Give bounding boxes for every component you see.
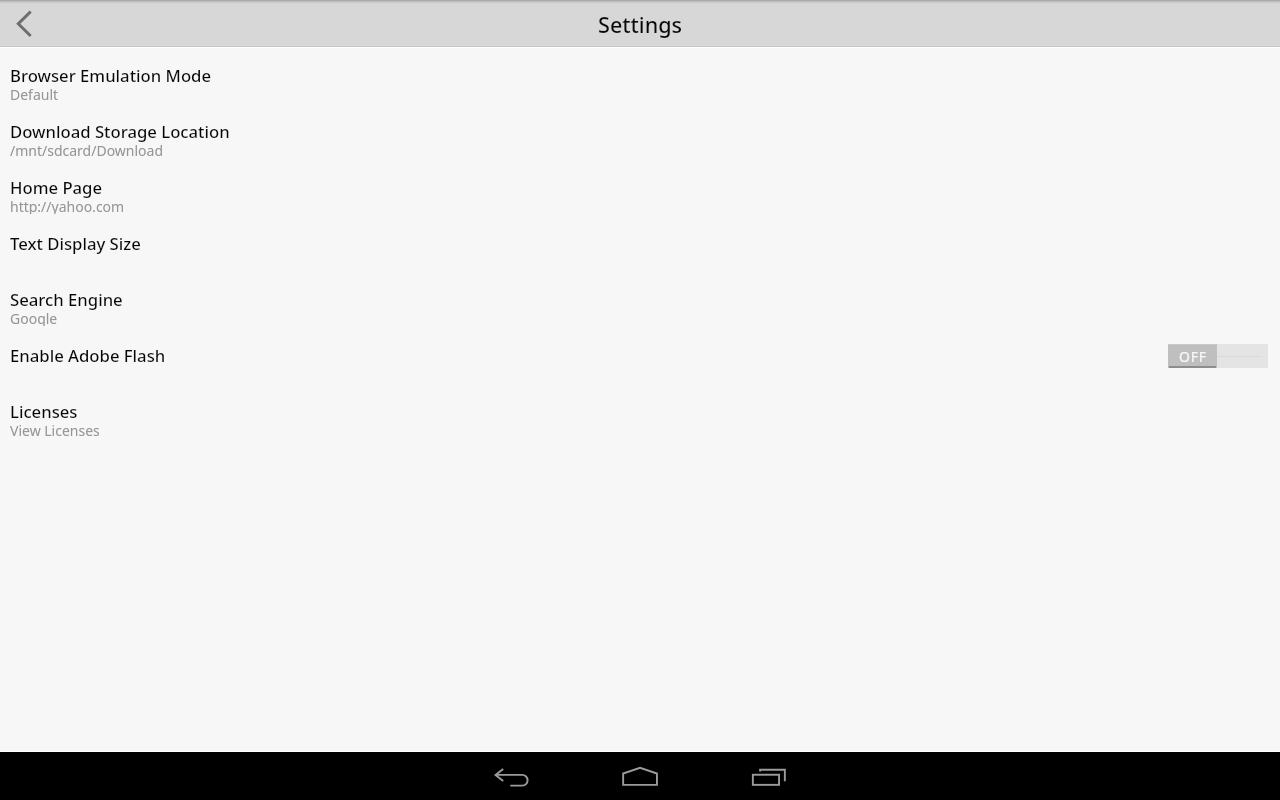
staticText: Download Storage Location (10, 120, 230, 143)
staticText: /mnt/sdcard/Download (10, 141, 164, 158)
staticText: View Licenses (10, 421, 100, 438)
button[interactable]: Home Page (0, 160, 1280, 216)
staticText: Text Display Size (10, 232, 141, 255)
staticText: OFF (1179, 347, 1207, 366)
staticText: Browser Emulation Mode (10, 64, 211, 87)
button[interactable]: Text Display Size (0, 216, 1280, 272)
button[interactable]: Enable Adobe Flash, off (1168, 344, 1268, 368)
staticText: Enable Adobe Flash (10, 344, 166, 367)
button[interactable]: Licenses (0, 384, 1280, 440)
button[interactable]: Navigate up (0, 0, 48, 48)
button[interactable]: Recent apps (745, 752, 793, 800)
button[interactable]: Home (616, 752, 664, 800)
staticText: Licenses (10, 400, 78, 423)
button[interactable]: Enable Adobe Flash (0, 328, 1280, 384)
button[interactable]: Download Storage Location (0, 104, 1280, 160)
staticText: Home Page (10, 176, 103, 199)
button[interactable]: Search Engine (0, 272, 1280, 328)
staticText: Default (10, 85, 59, 102)
staticText: Google (10, 309, 58, 326)
button[interactable]: Browser Emulation Mode (0, 48, 1280, 104)
staticText: Settings (598, 10, 683, 39)
button[interactable]: Back (488, 752, 536, 800)
staticText: Search Engine (10, 288, 123, 311)
staticText: http://yahoo.com (10, 197, 125, 214)
